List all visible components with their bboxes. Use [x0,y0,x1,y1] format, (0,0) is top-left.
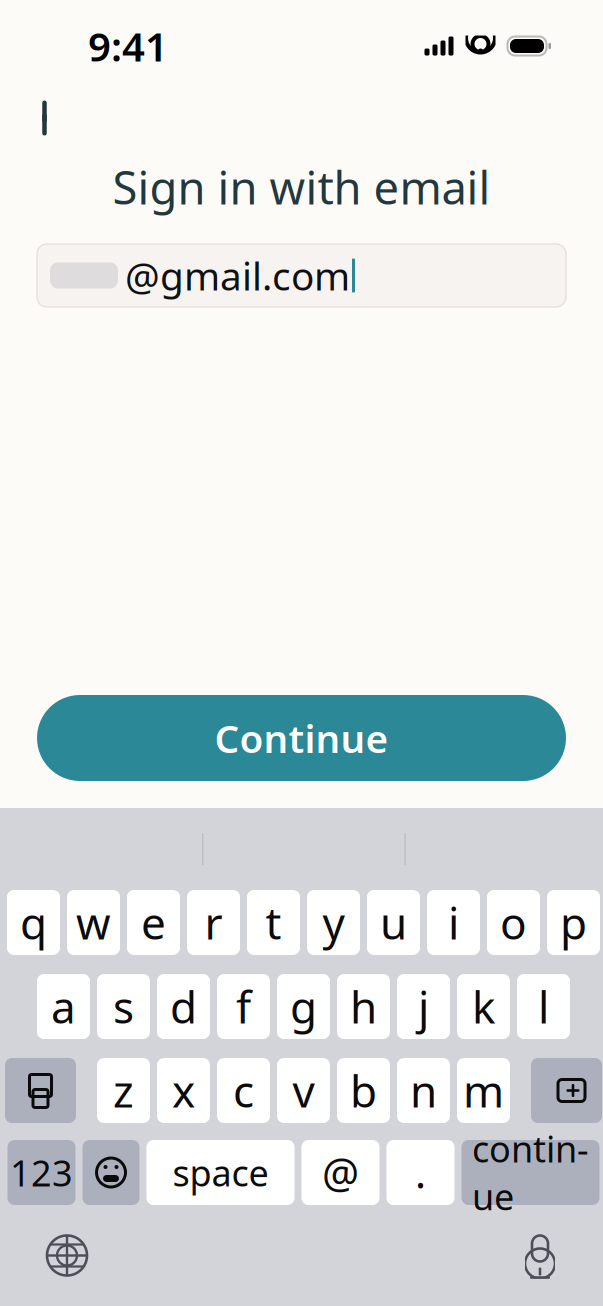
staticText: u [380,893,407,952]
button[interactable]: o [487,890,540,955]
staticText: g [290,977,317,1036]
staticText: t [265,893,281,952]
staticText: w [76,893,111,952]
button[interactable]: Next keyboard [44,1232,90,1278]
staticText: Continue [214,712,388,764]
button[interactable]: k [457,974,510,1039]
staticText: r [204,893,222,952]
button[interactable]: g [277,974,330,1039]
button[interactable]: f [217,974,270,1039]
button[interactable]: Continue [37,695,566,781]
button[interactable]: space [146,1140,294,1205]
button[interactable]: r [187,890,240,955]
button[interactable]: s [97,974,150,1039]
staticText: l [538,977,549,1036]
button[interactable]: Shift [5,1058,76,1123]
button[interactable]: 123 [7,1140,75,1205]
button[interactable]: e [127,890,180,955]
staticText: p [560,893,587,952]
staticText: @ [322,1145,359,1200]
button[interactable]: w [67,890,120,955]
staticText: a [51,977,76,1036]
staticText: y [322,893,344,952]
staticText: . [415,1145,426,1200]
staticText: @gmail.com [125,250,350,301]
button[interactable]: h [337,974,390,1039]
staticText: m [463,1061,504,1120]
button[interactable]: d [157,974,210,1039]
button[interactable]: Delete [531,1058,602,1123]
button[interactable]: c [217,1058,270,1123]
staticText: h [350,977,377,1036]
button[interactable]: b [337,1058,390,1123]
staticText: d [170,977,197,1036]
button[interactable]: p [547,890,600,955]
staticText: 9:41 [88,19,168,72]
staticText: continue [472,1125,589,1220]
button[interactable]: v [277,1058,330,1123]
staticText: v [292,1061,314,1120]
button[interactable]: x [157,1058,210,1123]
staticText: space [172,1149,268,1196]
button[interactable]: i [427,890,480,955]
staticText: z [113,1061,134,1120]
button[interactable]: a [37,974,90,1039]
button[interactable]: q [7,890,60,955]
button[interactable]: Back [18,92,78,144]
button[interactable]: n [397,1058,450,1123]
staticText: i [448,893,459,952]
staticText: k [472,977,495,1036]
staticText: n [410,1061,437,1120]
button[interactable]: t [247,890,300,955]
button[interactable]: Dictation [517,1229,563,1281]
staticText: c [233,1061,254,1120]
staticText: s [113,977,134,1036]
button[interactable]: continue [461,1140,599,1205]
button[interactable]: . [386,1140,454,1205]
button[interactable]: m [457,1058,510,1123]
button[interactable]: u [367,890,420,955]
button[interactable]: @ [301,1140,379,1205]
staticText: Sign in with email [112,157,490,217]
button[interactable]: Emoji [82,1140,139,1205]
staticText: e [141,893,166,952]
button[interactable]: z [97,1058,150,1123]
staticText: b [350,1061,377,1120]
staticText: q [20,893,47,952]
staticText: x [172,1061,195,1120]
staticText: j [418,977,429,1036]
button[interactable]: j [397,974,450,1039]
staticText: f [236,977,251,1036]
staticText: 123 [10,1149,73,1196]
staticText: o [500,893,527,952]
button[interactable]: l [517,974,570,1039]
button[interactable]: y [307,890,360,955]
